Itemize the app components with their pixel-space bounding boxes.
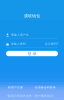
staticText: 忘记密码? [45, 42, 58, 46]
button[interactable]: 忘记密码? [45, 42, 58, 46]
staticText: 短信验证码登录 [35, 86, 56, 89]
staticText: 通联钱包 [24, 13, 40, 18]
button[interactable]: 登 录 [6, 51, 58, 56]
button[interactable]: 我已阅读并同意《用户服务协议》 [8, 94, 56, 97]
staticText: 新用户注册 [8, 86, 23, 89]
staticText: 请输入用户名 [11, 33, 29, 37]
staticText: 登 录 [27, 51, 36, 56]
staticText: 请输入密码 [11, 42, 26, 45]
button[interactable]: 短信验证码登录 [35, 86, 56, 89]
button[interactable]: 新用户注册 [8, 86, 23, 89]
staticText: 我已阅读并同意《用户服务协议》 [11, 94, 56, 98]
